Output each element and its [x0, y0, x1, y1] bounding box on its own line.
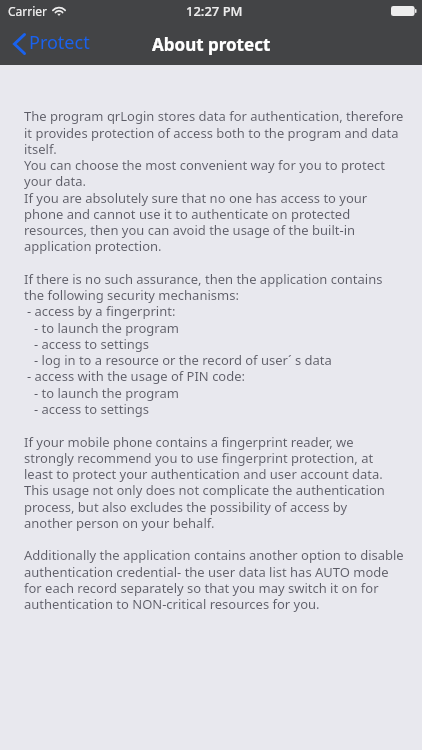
- staticText: - to launch the program: [34, 384, 179, 402]
- staticText: authentication credential- the user data…: [24, 563, 389, 581]
- staticText: - to launch the program: [34, 319, 179, 337]
- staticText: - access by a fingerprint:: [27, 302, 176, 320]
- other: Back: [13, 33, 26, 55]
- staticText: application protection.: [24, 237, 162, 255]
- staticText: the following security mechanisms:: [24, 286, 239, 304]
- staticText: phone and cannot use it to authenticate …: [24, 205, 351, 223]
- staticText: Protect: [29, 30, 90, 55]
- staticText: least to protect your authentication and…: [24, 465, 383, 483]
- staticText: - access to settings: [34, 400, 149, 418]
- other: Wi-Fi: [52, 6, 66, 16]
- staticText: authentication to NON-critical resources…: [24, 595, 320, 613]
- staticText: If you are absolutely sure that no one h…: [24, 189, 368, 207]
- staticText: The program qrLogin stores data for auth…: [24, 107, 404, 125]
- staticText: another person on your behalf.: [24, 514, 215, 532]
- staticText: You can choose the most convenient way f…: [24, 156, 385, 174]
- staticText: for each record separately so that you m…: [24, 579, 379, 597]
- staticText: your data.: [24, 172, 87, 190]
- staticText: - log in to a resource or the record of …: [34, 351, 332, 369]
- staticText: Additionally the application contains an…: [24, 546, 404, 564]
- staticText: - access to settings: [34, 335, 149, 353]
- staticText: - access with the usage of PIN code:: [27, 367, 246, 385]
- staticText: process, but also excludes the possibili…: [24, 498, 348, 516]
- staticText: resources, then you can avoid the usage …: [24, 221, 356, 239]
- staticText: This usage not only does not complicate …: [24, 481, 385, 499]
- staticText: itself.: [24, 140, 57, 158]
- staticText: If your mobile phone contains a fingerpr…: [24, 433, 354, 451]
- staticText: it provides protection of access both to…: [24, 124, 399, 142]
- staticText: 12:27 PM: [186, 2, 243, 20]
- staticText: About protect: [152, 33, 271, 56]
- staticText: strongly recommend you to use fingerprin…: [24, 449, 374, 467]
- button[interactable]: Back: [0, 27, 100, 60]
- staticText: If there is no such assurance, then the …: [24, 270, 383, 288]
- other: Battery full: [391, 6, 416, 16]
- staticText: Carrier: [8, 3, 48, 19]
